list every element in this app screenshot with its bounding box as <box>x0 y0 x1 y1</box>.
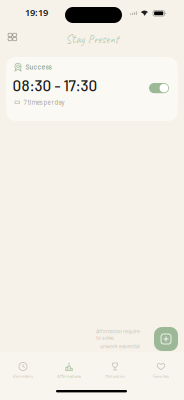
button[interactable]: Favorites <box>138 362 184 392</box>
staticText: Favorites <box>153 373 169 379</box>
staticText: Stay Present <box>65 31 118 46</box>
button[interactable]: Affirmations <box>46 362 92 392</box>
staticText: Affirmation require to solve <box>96 328 140 341</box>
button[interactable]: Reminders <box>0 362 46 392</box>
staticText: 7 times per day <box>23 98 64 106</box>
button[interactable]: Enabled <box>149 83 169 93</box>
staticText: Affirmations <box>57 373 81 379</box>
staticText: 08:30 - 17:30 <box>12 76 97 94</box>
button[interactable]: Add <box>154 327 178 351</box>
staticText: 19:19 <box>25 6 48 19</box>
button[interactable]: Motivation <box>92 362 138 392</box>
staticText: unwork essential <box>100 343 140 349</box>
button[interactable]: Menu <box>3 29 21 45</box>
staticText: Reminders <box>13 373 33 379</box>
button[interactable]: Success <box>6 57 178 121</box>
staticText: Success <box>25 62 51 71</box>
staticText: Motivation <box>105 373 124 379</box>
